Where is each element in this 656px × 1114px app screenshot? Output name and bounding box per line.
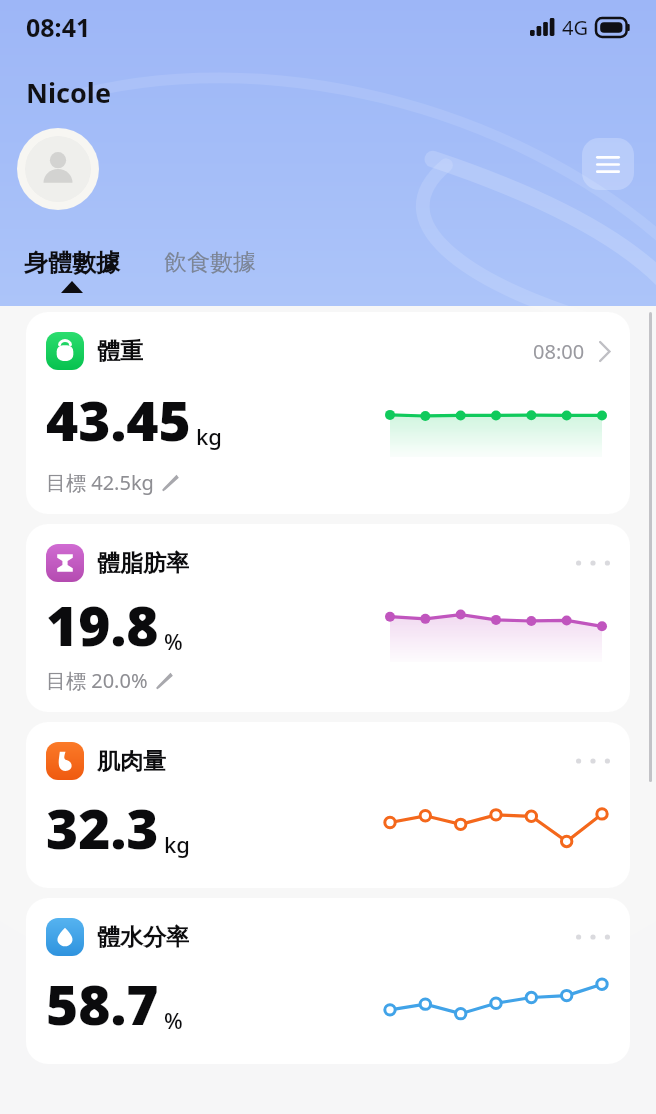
staticText: 目標 42.5kg [46,469,154,496]
staticText: 目標 20.0% [46,667,148,694]
staticText: 體重 [97,337,143,366]
staticText: Nicole [26,74,111,111]
button[interactable]: 體脂肪率 [26,524,630,712]
staticText: kg [196,421,222,451]
button[interactable]: 飲食數據 [164,248,256,277]
staticText: 58.7 [46,966,159,1041]
button[interactable]: Profile [17,128,99,210]
staticText: kg [164,829,190,859]
button[interactable]: Menu [582,138,634,190]
staticText: 4G [562,14,588,41]
staticText: 肌肉量 [97,747,166,776]
button[interactable]: 體水分率 [26,898,630,1064]
staticText: 43.45 [46,382,191,457]
button[interactable]: 體重 [26,312,630,514]
staticText: 體脂肪率 [97,549,189,578]
button[interactable]: Edit target [161,474,179,492]
staticText: 08:00 [533,338,585,365]
button[interactable]: 肌肉量 [26,722,630,888]
staticText: % [164,1005,183,1035]
staticText: % [164,626,183,656]
staticText: 32.3 [46,790,159,865]
staticText: 19.8 [46,587,159,662]
button[interactable]: Edit target [155,672,173,690]
staticText: 體水分率 [97,923,189,952]
staticText: 身體數據 [24,248,120,278]
button[interactable]: 身體數據 [24,248,120,293]
staticText: 08:41 [26,10,91,44]
